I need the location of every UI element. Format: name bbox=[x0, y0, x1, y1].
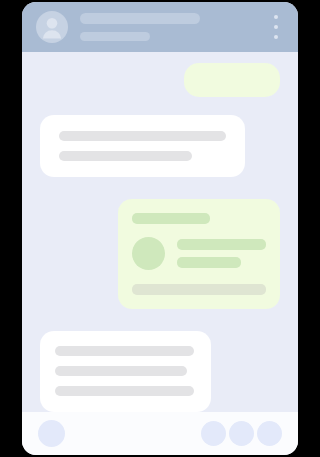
button[interactable] bbox=[40, 115, 245, 177]
button[interactable]: Action 3 bbox=[257, 421, 282, 446]
button[interactable]: Add attachment bbox=[38, 420, 65, 447]
button[interactable]: Action 2 bbox=[229, 421, 254, 446]
button[interactable] bbox=[184, 63, 280, 97]
button[interactable]: Profile bbox=[36, 11, 68, 43]
button[interactable]: Action 1 bbox=[201, 421, 226, 446]
button[interactable] bbox=[40, 331, 211, 412]
button[interactable]: More options bbox=[264, 7, 288, 47]
button[interactable] bbox=[118, 199, 280, 309]
